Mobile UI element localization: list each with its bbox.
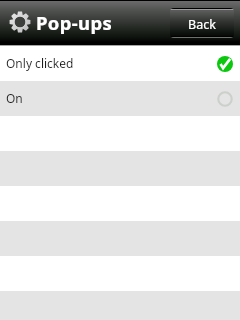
button[interactable]: Only clicked bbox=[0, 46, 240, 81]
staticText: On bbox=[6, 90, 23, 106]
staticText: Pop-ups bbox=[36, 10, 113, 35]
button[interactable]: Back bbox=[170, 8, 234, 38]
staticText: Only clicked bbox=[6, 55, 74, 71]
button[interactable]: On bbox=[0, 81, 240, 116]
staticText: Back bbox=[188, 16, 216, 33]
button[interactable]: Settings bbox=[8, 10, 32, 34]
